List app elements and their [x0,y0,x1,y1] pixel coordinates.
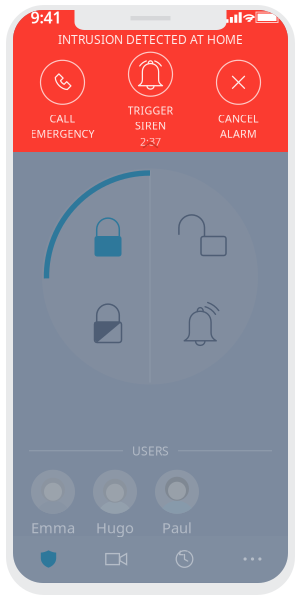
button[interactable]: Disarm [179,216,227,258]
staticText: CALL [49,111,75,125]
button[interactable]: Emma [27,470,79,537]
staticText: 2:37 [140,135,161,149]
button[interactable]: History [150,536,218,582]
button[interactable]: Security [14,536,82,582]
staticText: USERS [132,443,169,459]
staticText: CANCEL [218,111,259,125]
button[interactable]: More [218,536,286,582]
staticText: Emma [31,518,75,537]
staticText: 9:41 [30,7,61,28]
button[interactable]: Arm partial [92,302,124,344]
staticText: EMERGENCY [30,126,94,141]
button[interactable]: Alarm [182,305,222,345]
button[interactable]: CALL [18,60,106,141]
button[interactable]: CANCEL [194,60,282,141]
staticText: ALARM [220,126,257,141]
staticText: Paul [162,518,192,537]
staticText: INTRUSION DETECTED AT HOME [58,31,243,47]
button[interactable]: Paul [151,470,203,537]
button[interactable]: Collapse alert [138,139,162,151]
staticText: TRIGGER [127,103,173,117]
staticText: Hugo [96,518,134,537]
button[interactable]: TRIGGER [106,52,194,149]
button[interactable]: Arm away [92,216,124,258]
button[interactable]: Cameras [82,536,150,582]
button[interactable]: Hugo [89,470,141,537]
staticText: SIREN [135,118,166,133]
